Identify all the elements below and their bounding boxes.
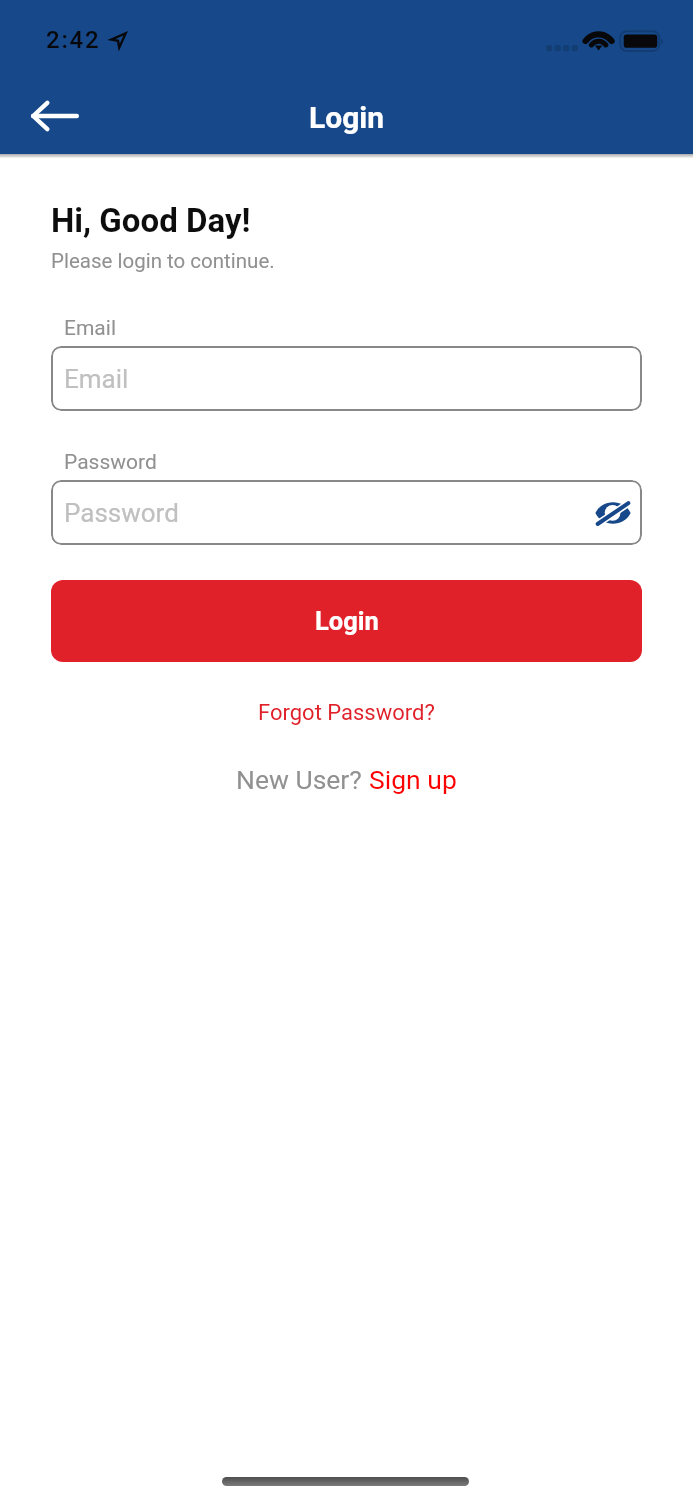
staticText: 2:42 [46,26,101,54]
staticText: Login [309,100,385,135]
button[interactable]: Back [16,88,94,144]
staticText: Email [64,364,129,394]
staticText: Sign up [369,764,457,795]
staticText: Forgot Password? [258,700,435,726]
staticText: Please login to continue. [51,249,275,273]
staticText: Login [315,606,379,636]
button[interactable]: New User? [224,758,469,801]
staticText: Hi, Good Day! [51,201,251,240]
button[interactable]: Login [51,580,642,662]
button[interactable]: Password [51,480,642,545]
staticText: Password [64,498,179,528]
button[interactable]: Email [51,346,642,411]
button[interactable]: Forgot Password? [246,694,447,732]
staticText: Email [64,316,116,341]
staticText: Password [64,450,157,475]
button[interactable]: Show password [591,493,635,533]
staticText: New User? [236,764,369,795]
